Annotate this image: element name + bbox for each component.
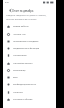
staticText: Найдите сведения по дням и узнайте, скол…: [6, 14, 47, 20]
button[interactable]: Аккумулятор: [3, 52, 56, 59]
button[interactable]: Аккаунты: [3, 89, 56, 96]
staticText: Частота сна: [13, 33, 26, 36]
staticText: Аккумулятор: [13, 54, 27, 57]
staticText: Уведомления и функции: [13, 47, 40, 50]
button[interactable]: Звук: [3, 74, 56, 81]
staticText: Аккаунты: [13, 91, 24, 94]
button[interactable]: Частота сна: [3, 31, 56, 38]
staticText: Конфиденциальность: [13, 83, 37, 86]
button[interactable]: Хранилище: [3, 67, 56, 74]
button[interactable]: Настройки экрана: [3, 60, 56, 67]
button[interactable]: Back: [6, 6, 14, 14]
staticText: Настройки экрана: [13, 62, 33, 65]
button[interactable]: Приложения и уведомл.: [3, 38, 56, 45]
staticText: 9:41: [5, 1, 10, 4]
staticText: Система и обновл.: [13, 98, 33, 101]
button[interactable]: Уведомления и функции: [3, 45, 56, 52]
staticText: Приложения и уведомл.: [13, 40, 39, 43]
staticText: Хранилище: [13, 69, 26, 72]
staticText: Звук: [13, 76, 18, 79]
staticText: Режим работы: [13, 25, 29, 28]
button[interactable]: Конфиденциальность: [3, 81, 56, 88]
button[interactable]: Режим работы: [3, 23, 56, 30]
button[interactable]: Система и обновл.: [3, 96, 56, 103]
staticText: Отчет за декабрь: [12, 9, 34, 12]
